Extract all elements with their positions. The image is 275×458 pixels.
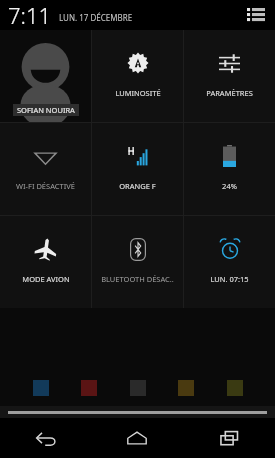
staticText: LUN. 17 DÉCEMBRE bbox=[59, 12, 133, 23]
button[interactable]: Home bbox=[91, 418, 183, 458]
button[interactable]: BLUETOOTH DÉSAC.. bbox=[92, 216, 183, 308]
button[interactable]: LUMINOSITÉ bbox=[92, 30, 183, 122]
button[interactable]: WI-FI DÉSACTIVÉ bbox=[0, 123, 91, 215]
staticText: SOFIAN NOUIRA bbox=[17, 105, 75, 115]
staticText: WI-FI DÉSACTIVÉ bbox=[16, 181, 75, 191]
button[interactable]: 24% bbox=[184, 123, 275, 215]
button[interactable]: Quick settings list bbox=[243, 2, 269, 28]
button[interactable]: PARAMÈTRES bbox=[184, 30, 275, 122]
staticText: LUN. 07:15 bbox=[210, 274, 249, 284]
staticText: ORANGE F bbox=[119, 181, 156, 191]
button[interactable]: LUN. 07:15 bbox=[184, 216, 275, 308]
staticText: MODE AVION bbox=[22, 274, 70, 284]
staticText: 24% bbox=[222, 181, 237, 191]
button[interactable]: SOFIAN NOUIRA bbox=[0, 30, 91, 122]
button[interactable]: ORANGE F bbox=[92, 123, 183, 215]
button[interactable]: Back bbox=[0, 418, 91, 458]
staticText: LUMINOSITÉ bbox=[115, 88, 161, 98]
staticText: 7:11 bbox=[8, 0, 52, 30]
button[interactable]: Recents bbox=[183, 418, 275, 458]
staticText: PARAMÈTRES bbox=[206, 88, 253, 98]
button[interactable]: MODE AVION bbox=[0, 216, 91, 308]
staticText: BLUETOOTH DÉSAC.. bbox=[101, 274, 174, 284]
